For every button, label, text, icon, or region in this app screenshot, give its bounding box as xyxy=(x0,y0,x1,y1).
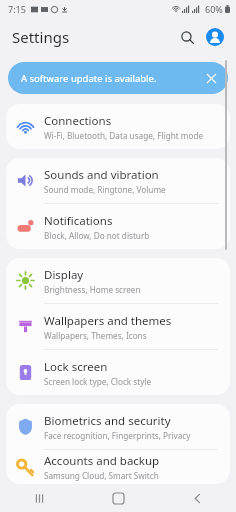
staticText: Sounds and vibration xyxy=(44,167,159,183)
button[interactable]: Accounts and backup xyxy=(6,450,230,484)
staticText: Sound mode, Ringtone, Volume xyxy=(44,184,166,195)
button[interactable]: Wallpapers and themes xyxy=(6,304,230,349)
button[interactable]: Lock screen xyxy=(6,350,230,395)
button[interactable]: Home xyxy=(79,484,157,512)
staticText: 7:15 xyxy=(8,3,26,15)
staticText: Accounts and backup xyxy=(44,453,160,469)
button[interactable]: Back xyxy=(158,484,236,512)
button[interactable]: Biometrics and security xyxy=(6,404,230,449)
staticText: Screen lock type, Clock style xyxy=(44,376,152,387)
button[interactable]: Search xyxy=(174,24,200,50)
button[interactable]: Dismiss xyxy=(200,67,222,89)
button[interactable]: A software update is available. xyxy=(8,62,228,94)
staticText: Lock screen xyxy=(44,359,108,375)
staticText: Settings xyxy=(12,27,70,47)
staticText: Face recognition, Fingerprints, Privacy xyxy=(44,430,191,441)
staticText: Wi-Fi, Bluetooth, Data usage, Flight mod… xyxy=(44,130,204,141)
staticText: Brightness, Home screen xyxy=(44,284,141,295)
button[interactable]: Recents xyxy=(0,484,78,512)
button[interactable]: Sounds and vibration xyxy=(6,158,230,203)
staticText: Connections xyxy=(44,113,112,129)
staticText: A software update is available. xyxy=(21,72,157,85)
button[interactable]: Notifications xyxy=(6,204,230,249)
button[interactable]: Account xyxy=(202,24,228,50)
staticText: Samsung Cloud, Smart Switch xyxy=(44,470,159,481)
button[interactable]: Connections xyxy=(6,104,230,149)
staticText: Biometrics and security xyxy=(44,413,171,429)
staticText: Display xyxy=(44,267,84,283)
staticText: Block, Allow, Do not disturb xyxy=(44,230,150,241)
staticText: Wallpapers and themes xyxy=(44,313,172,329)
button[interactable]: Display xyxy=(6,258,230,303)
staticText: Wallpapers, Themes, Icons xyxy=(44,330,147,341)
staticText: Notifications xyxy=(44,213,113,229)
staticText: 60% xyxy=(205,3,223,15)
